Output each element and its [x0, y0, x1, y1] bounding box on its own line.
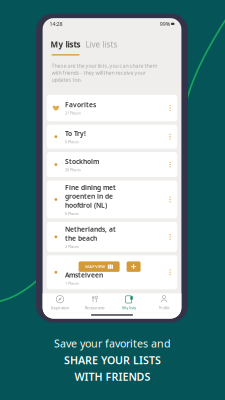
- staticText: 26 Places: [65, 167, 81, 172]
- button[interactable]: To Try!: [47, 125, 177, 149]
- staticText: MAP VIEW: [85, 264, 105, 269]
- staticText: Fine dining met groenten in de hoofdrol …: [65, 183, 116, 209]
- staticText: 2 Places: [65, 244, 79, 249]
- button[interactable]: My lists: [112, 293, 147, 312]
- staticText: Profile: [159, 305, 170, 310]
- staticText: Favorites: [65, 100, 96, 109]
- button[interactable]: Restaurants: [77, 293, 112, 312]
- staticText: Stockholm: [65, 157, 99, 166]
- button[interactable]: My lists: [48, 39, 84, 55]
- staticText: Inspiration: [51, 305, 69, 310]
- staticText: 6 Places: [65, 139, 79, 144]
- staticText: Live lists: [86, 39, 118, 50]
- staticText: Restaurants: [85, 305, 105, 310]
- button[interactable]: Amstelveen: [47, 255, 177, 289]
- button[interactable]: Live lists: [84, 39, 120, 55]
- staticText: 21 Places: [65, 110, 81, 116]
- staticText: These are the your lists, you can share …: [52, 62, 158, 83]
- staticText: Amstelveen: [65, 270, 103, 279]
- button[interactable]: Fine dining met groenten in de hoofdrol …: [47, 180, 177, 218]
- button[interactable]: Inspiration: [43, 293, 77, 312]
- button[interactable]: Add list: [127, 261, 141, 272]
- staticText: 14:28: [50, 20, 63, 27]
- staticText: 6 Places: [65, 211, 79, 216]
- button[interactable]: Netherlands, at the beach: [47, 222, 177, 252]
- staticText: My lists: [122, 305, 136, 310]
- button[interactable]: MAP VIEW: [79, 261, 120, 272]
- staticText: SHARE YOUR LISTS: [64, 353, 161, 367]
- staticText: 1 Places: [65, 280, 79, 286]
- button[interactable]: Profile: [147, 293, 181, 312]
- button[interactable]: Stockholm: [47, 152, 177, 177]
- staticText: Save your favorites and: [54, 336, 171, 350]
- button[interactable]: Favorites: [47, 95, 177, 121]
- staticText: Netherlands, at the beach: [65, 225, 116, 242]
- staticText: WITH FRIENDS: [74, 370, 150, 384]
- staticText: 99%: [160, 20, 170, 27]
- staticText: My lists: [51, 39, 81, 50]
- staticText: To Try!: [65, 129, 86, 138]
